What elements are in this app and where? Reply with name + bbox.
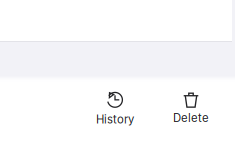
button[interactable]: History	[77, 88, 153, 128]
staticText: Delete	[173, 111, 209, 125]
button[interactable]: Delete	[153, 88, 229, 128]
staticText: History	[96, 113, 134, 126]
